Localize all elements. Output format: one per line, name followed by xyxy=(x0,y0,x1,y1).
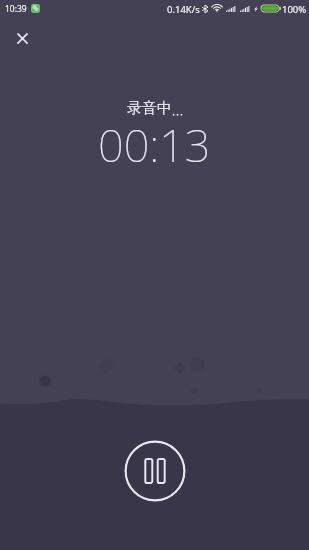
staticText: 100% xyxy=(282,3,307,16)
staticText: 10:39 xyxy=(5,3,27,15)
button[interactable]: Pause recording xyxy=(124,440,186,502)
button[interactable]: Close xyxy=(6,22,38,54)
staticText: 00:13 xyxy=(98,114,211,175)
staticText: 0.14K/s xyxy=(167,3,200,16)
staticText: 录音中 xyxy=(127,99,172,118)
